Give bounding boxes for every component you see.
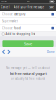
staticText: Carrier	[1, 1, 7, 2]
staticText: Choose	[2, 12, 13, 16]
button[interactable]: Choose	[0, 25, 56, 31]
staticText: or actually fat free natural	[11, 77, 45, 80]
staticText: 9:41	[27, 1, 30, 2]
staticText: Supermarket	[2, 19, 18, 23]
button[interactable]: Cancel	[1, 3, 10, 11]
staticText: Save	[24, 41, 32, 46]
staticText: Cancel	[1, 5, 10, 9]
button[interactable]: Add to shopping list	[0, 32, 56, 36]
button[interactable]: Next field	[6, 47, 11, 57]
button[interactable]: Done	[47, 47, 55, 57]
staticText: fat free natural yogurt	[9, 71, 46, 76]
staticText: No message yet — tell us about	[6, 66, 50, 70]
staticText: Done	[47, 50, 55, 54]
button[interactable]: Supermarket	[0, 18, 56, 24]
staticText: Save	[49, 5, 54, 9]
button[interactable]: Save	[2, 40, 54, 47]
staticText: Choose	[2, 26, 13, 30]
button[interactable]: Choose	[0, 11, 56, 17]
staticText: Add to shopping list	[5, 32, 35, 36]
button[interactable]: Previous field	[1, 47, 6, 57]
staticText: food	[14, 26, 21, 30]
button[interactable]: Save	[48, 3, 55, 11]
staticText: category	[14, 12, 25, 16]
staticText: Add your first message	[13, 5, 44, 9]
